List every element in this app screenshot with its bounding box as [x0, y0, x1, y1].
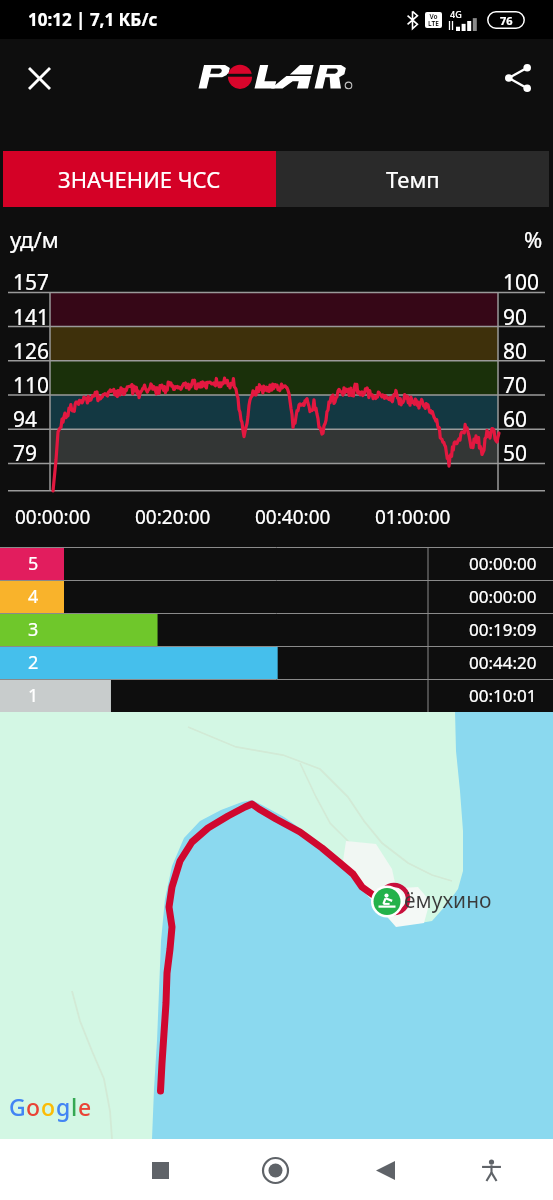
- staticText: 00:00:00: [469, 552, 537, 575]
- staticText: 94: [13, 405, 38, 434]
- staticText: 3: [28, 617, 39, 642]
- staticText: l: [71, 1091, 78, 1122]
- button[interactable]: 1: [0, 679, 553, 712]
- button[interactable]: 3: [0, 613, 553, 646]
- button[interactable]: 2: [0, 646, 553, 679]
- staticText: g: [56, 1091, 71, 1122]
- staticText: o: [41, 1091, 56, 1122]
- staticText: Vo LTE: [428, 12, 439, 28]
- button[interactable]: ЗНАЧЕНИЕ ЧСС: [3, 151, 276, 207]
- staticText: 80: [503, 337, 528, 366]
- staticText: 4G: [450, 8, 462, 20]
- staticText: 157: [13, 268, 50, 297]
- staticText: 00:00:00: [469, 585, 537, 608]
- staticText: e: [78, 1091, 92, 1122]
- button[interactable]: Темп: [276, 151, 549, 207]
- button[interactable]: 5: [0, 547, 553, 580]
- staticText: 110: [13, 371, 50, 400]
- staticText: 100: [503, 268, 540, 297]
- staticText: 90: [503, 303, 528, 332]
- staticText: ЗНАЧЕНИЕ ЧСС: [58, 164, 221, 194]
- staticText: 5: [28, 551, 39, 576]
- staticText: 76: [500, 13, 513, 28]
- button[interactable]: Home: [248, 1143, 302, 1197]
- staticText: 126: [13, 337, 50, 366]
- staticText: 70: [503, 371, 528, 400]
- staticText: Темп: [386, 164, 440, 194]
- staticText: 10:12 | 7,1 КБ/с: [28, 8, 158, 31]
- staticText: уд/м: [10, 224, 59, 254]
- button[interactable]: Accessibility: [464, 1143, 518, 1197]
- staticText: ёмухино: [404, 886, 492, 915]
- staticText: o: [26, 1091, 41, 1122]
- staticText: 00:00:00: [15, 504, 91, 530]
- button[interactable]: Close: [13, 52, 65, 104]
- staticText: 00:20:00: [135, 504, 211, 530]
- staticText: 01:00:00: [375, 504, 451, 530]
- staticText: 4: [28, 584, 39, 609]
- staticText: 141: [13, 303, 50, 332]
- staticText: 00:44:20: [469, 651, 537, 674]
- button[interactable]: ёмухино: [0, 711, 553, 1139]
- staticText: 1: [28, 683, 39, 708]
- staticText: G: [9, 1091, 26, 1122]
- staticText: 79: [13, 439, 38, 468]
- button[interactable]: 4: [0, 580, 553, 613]
- staticText: 2: [28, 650, 39, 675]
- button[interactable]: Share: [492, 52, 544, 104]
- staticText: 00:40:00: [255, 504, 331, 530]
- staticText: 00:10:01: [469, 684, 537, 707]
- button[interactable]: Back: [358, 1143, 412, 1197]
- staticText: %: [524, 224, 543, 254]
- staticText: 60: [503, 405, 528, 434]
- button[interactable]: Recent apps: [133, 1143, 187, 1197]
- staticText: 50: [503, 439, 528, 468]
- staticText: 00:19:09: [469, 618, 537, 641]
